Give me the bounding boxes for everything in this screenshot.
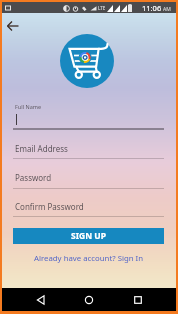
staticText: SIGN UP bbox=[71, 230, 106, 242]
button[interactable]: Recent apps bbox=[128, 290, 148, 310]
button[interactable]: Back bbox=[31, 290, 51, 310]
staticText: Email Address bbox=[15, 143, 68, 154]
button[interactable]: Home bbox=[79, 290, 99, 310]
staticText: Already have account? Sign In bbox=[34, 253, 144, 264]
staticText: Password bbox=[15, 172, 52, 183]
staticText: Confirm Password bbox=[15, 201, 84, 212]
button[interactable]: Already have account? Sign In bbox=[2, 252, 176, 265]
staticText: AM bbox=[163, 6, 171, 13]
button[interactable]: SIGN UP bbox=[13, 228, 164, 244]
button[interactable]: Back bbox=[4, 17, 22, 35]
staticText: LTE bbox=[98, 5, 106, 11]
staticText: 11:06 bbox=[142, 3, 162, 13]
staticText: Full Name bbox=[15, 103, 42, 110]
